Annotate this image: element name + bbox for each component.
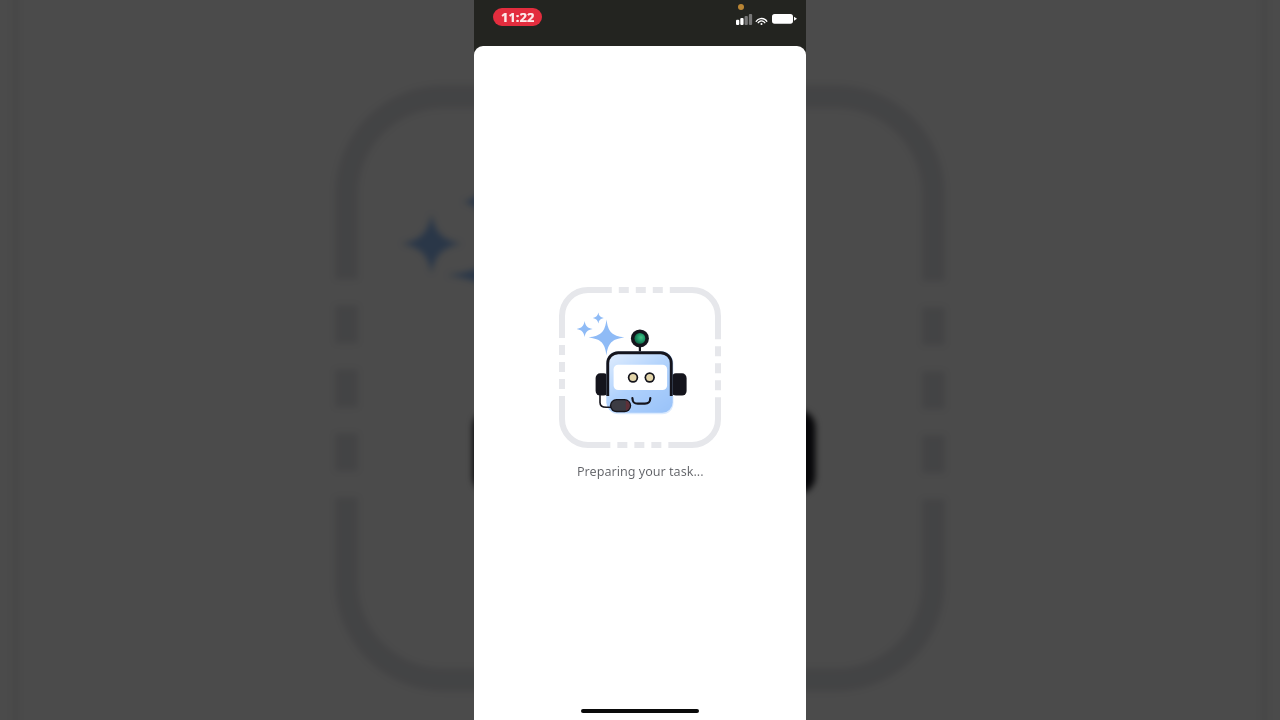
staticText: Preparing your task...	[577, 463, 704, 480]
other: Preparing your task illustration	[559, 287, 721, 448]
button[interactable]: 11:22	[493, 8, 542, 26]
button[interactable]: Home	[581, 709, 699, 713]
staticText: 11:22	[501, 8, 535, 26]
